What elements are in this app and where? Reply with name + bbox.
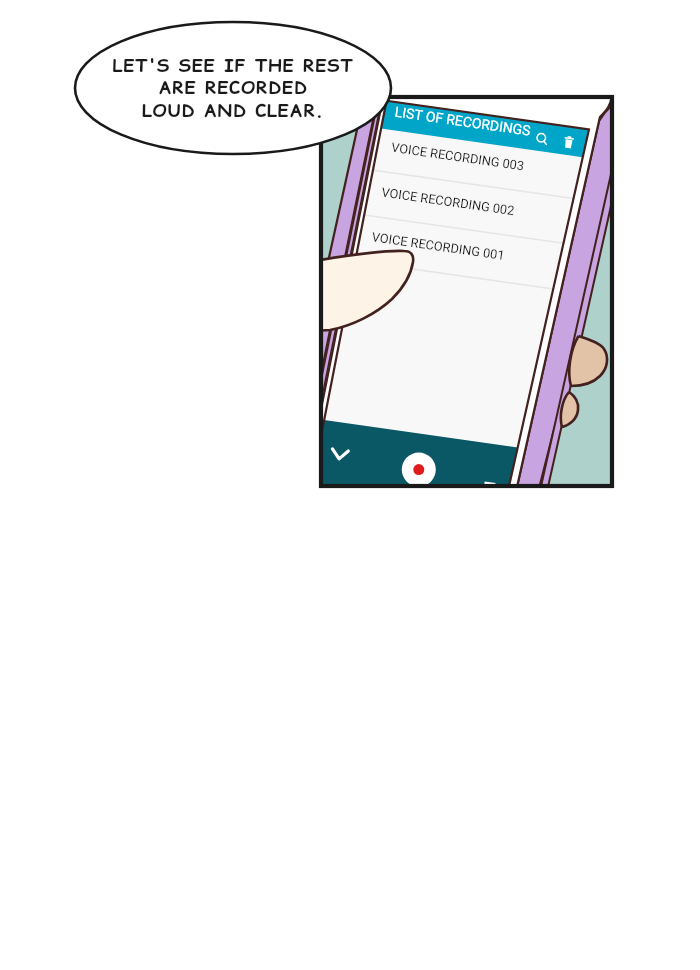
button[interactable]: Search recordings [388, 104, 588, 138]
button[interactable]: Voice recording 001 [360, 225, 568, 271]
button[interactable]: Collapse [326, 440, 360, 472]
button[interactable]: Delete recordings [555, 130, 589, 162]
button[interactable]: Voice recording 002 [370, 179, 578, 225]
button[interactable]: Record [400, 448, 440, 486]
button[interactable]: Voice recording 003 [380, 133, 588, 179]
